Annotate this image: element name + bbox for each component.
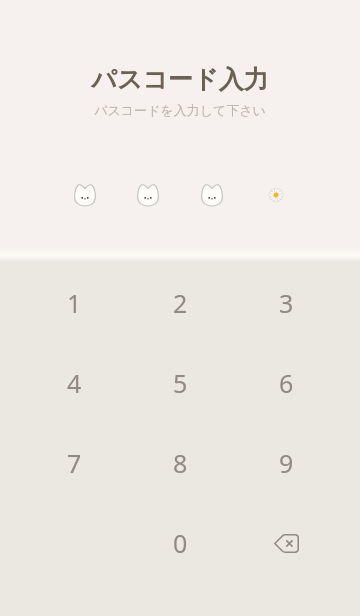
button[interactable]: 3	[233, 263, 339, 343]
button[interactable]: 7	[21, 423, 127, 503]
button[interactable]: 6	[233, 343, 339, 423]
button[interactable]: 9	[233, 423, 339, 503]
staticText: パスコードを入力して下さい	[0, 102, 360, 118]
staticText: 6	[279, 366, 294, 400]
staticText: パスコード入力	[0, 64, 360, 95]
button[interactable]: 1	[21, 263, 127, 343]
button[interactable]: Delete	[233, 503, 339, 583]
staticText: 9	[279, 446, 294, 480]
staticText: 7	[67, 446, 82, 480]
staticText: 4	[67, 366, 82, 400]
button[interactable]: 5	[127, 343, 233, 423]
staticText: 1	[67, 286, 82, 320]
staticText: 2	[173, 286, 188, 320]
button[interactable]: 0	[127, 503, 233, 583]
staticText: 5	[173, 366, 188, 400]
button[interactable]: 8	[127, 423, 233, 503]
staticText: 0	[173, 526, 188, 560]
button[interactable]: 2	[127, 263, 233, 343]
staticText: 3	[279, 286, 294, 320]
staticText: 8	[173, 446, 188, 480]
button[interactable]: 4	[21, 343, 127, 423]
